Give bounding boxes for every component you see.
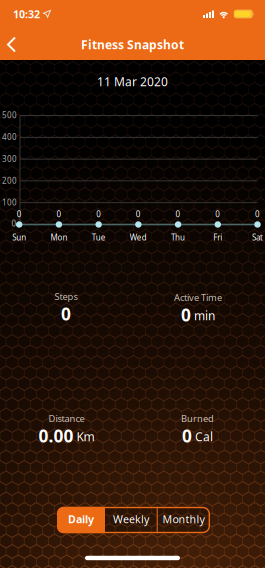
button[interactable]: Monthly	[157, 507, 210, 533]
staticText: Cal	[195, 429, 213, 445]
staticText: min	[194, 308, 215, 324]
staticText: 0	[181, 303, 191, 326]
staticText: 11 Mar 2020	[97, 73, 168, 89]
staticText: Steps	[54, 290, 77, 303]
staticText: Burned	[181, 412, 214, 425]
staticText: Active Time	[174, 291, 222, 304]
staticText: 300	[2, 153, 17, 164]
staticText: Sun	[12, 232, 26, 243]
staticText: 0	[56, 209, 61, 219]
staticText: Thu	[171, 232, 185, 243]
staticText: Km	[76, 429, 94, 445]
staticText: 500	[2, 110, 17, 120]
staticText: Fitness Snapshot	[81, 36, 184, 52]
staticText: Tue	[92, 232, 106, 243]
staticText: Sat	[252, 232, 263, 243]
staticText: Wed	[130, 232, 147, 243]
staticText: 0	[11, 218, 16, 229]
staticText: Fri	[213, 232, 222, 243]
staticText: 0	[17, 209, 22, 219]
staticText: 0	[136, 209, 141, 219]
staticText: 200	[2, 175, 17, 186]
staticText: Monthly	[163, 512, 205, 526]
staticText: 0	[182, 424, 192, 447]
staticText: Weekly	[113, 512, 149, 526]
button[interactable]: Back	[0, 32, 24, 56]
staticText: Daily	[68, 512, 94, 526]
staticText: 10:32	[13, 7, 40, 21]
staticText: 100	[2, 197, 17, 208]
button[interactable]: Weekly	[105, 507, 157, 533]
staticText: 0	[61, 302, 71, 325]
staticText: Distance	[48, 412, 84, 425]
staticText: Mon	[50, 232, 67, 243]
button[interactable]: Daily	[57, 507, 105, 533]
staticText: 0.00	[38, 424, 73, 447]
staticText: 0	[176, 209, 181, 219]
staticText: 0	[96, 209, 101, 219]
staticText: 400	[2, 132, 17, 142]
staticText: 0	[255, 209, 260, 219]
staticText: 0	[215, 209, 220, 219]
